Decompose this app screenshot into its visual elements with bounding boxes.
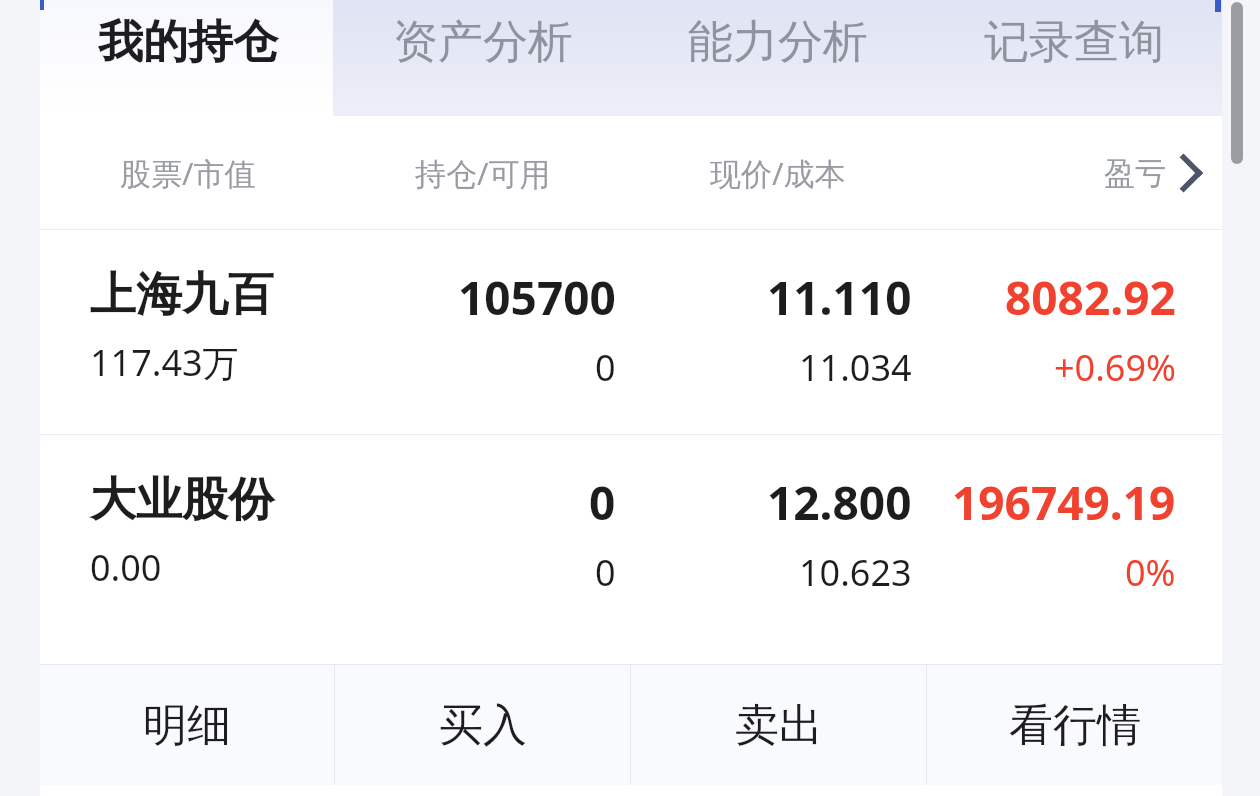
staticText: 记录查询 (984, 14, 1164, 71)
staticText: 看行情 (1009, 698, 1141, 753)
staticText: 8082.92 (1005, 266, 1176, 329)
staticText: 盈亏 (1104, 154, 1166, 193)
staticText: +0.69% (1054, 343, 1176, 392)
button[interactable]: 买入 (335, 665, 630, 785)
staticText: 10.623 (799, 548, 912, 597)
button[interactable]: 我的持仓 (40, 0, 335, 116)
staticText: 0.00 (90, 543, 162, 592)
staticText: 明细 (143, 698, 231, 753)
button[interactable]: 能力分析 (630, 0, 926, 116)
staticText: 11.110 (767, 266, 912, 329)
staticText: 12.800 (767, 471, 912, 534)
button[interactable]: 股票/市值 (40, 116, 1222, 229)
staticText: 我的持仓 (98, 14, 278, 71)
staticText: 股票/市值 (120, 152, 256, 194)
staticText: 资产分析 (393, 14, 573, 71)
staticText: 上海九百 (90, 266, 274, 324)
button[interactable]: 看行情 (927, 665, 1222, 785)
staticText: 0 (595, 343, 616, 392)
staticText: 11.034 (799, 343, 912, 392)
button[interactable]: 上海九百 (40, 230, 1222, 434)
staticText: 能力分析 (688, 14, 868, 71)
staticText: 0% (1125, 548, 1176, 597)
button[interactable]: 资产分析 (335, 0, 630, 116)
staticText: 196749.19 (952, 471, 1176, 534)
button[interactable]: 记录查询 (926, 0, 1222, 116)
button[interactable]: 卖出 (631, 665, 926, 785)
button[interactable]: 明细 (40, 665, 334, 785)
staticText: 0 (589, 471, 616, 534)
staticText: 卖出 (735, 698, 823, 753)
staticText: 大业股份 (90, 471, 274, 529)
staticText: 105700 (458, 266, 616, 329)
button[interactable]: 大业股份 (40, 435, 1222, 639)
staticText: 0 (595, 548, 616, 597)
staticText: 持仓/可用 (415, 152, 551, 194)
staticText: 117.43万 (90, 338, 239, 387)
staticText: 现价/成本 (710, 152, 846, 194)
staticText: 买入 (439, 698, 527, 753)
